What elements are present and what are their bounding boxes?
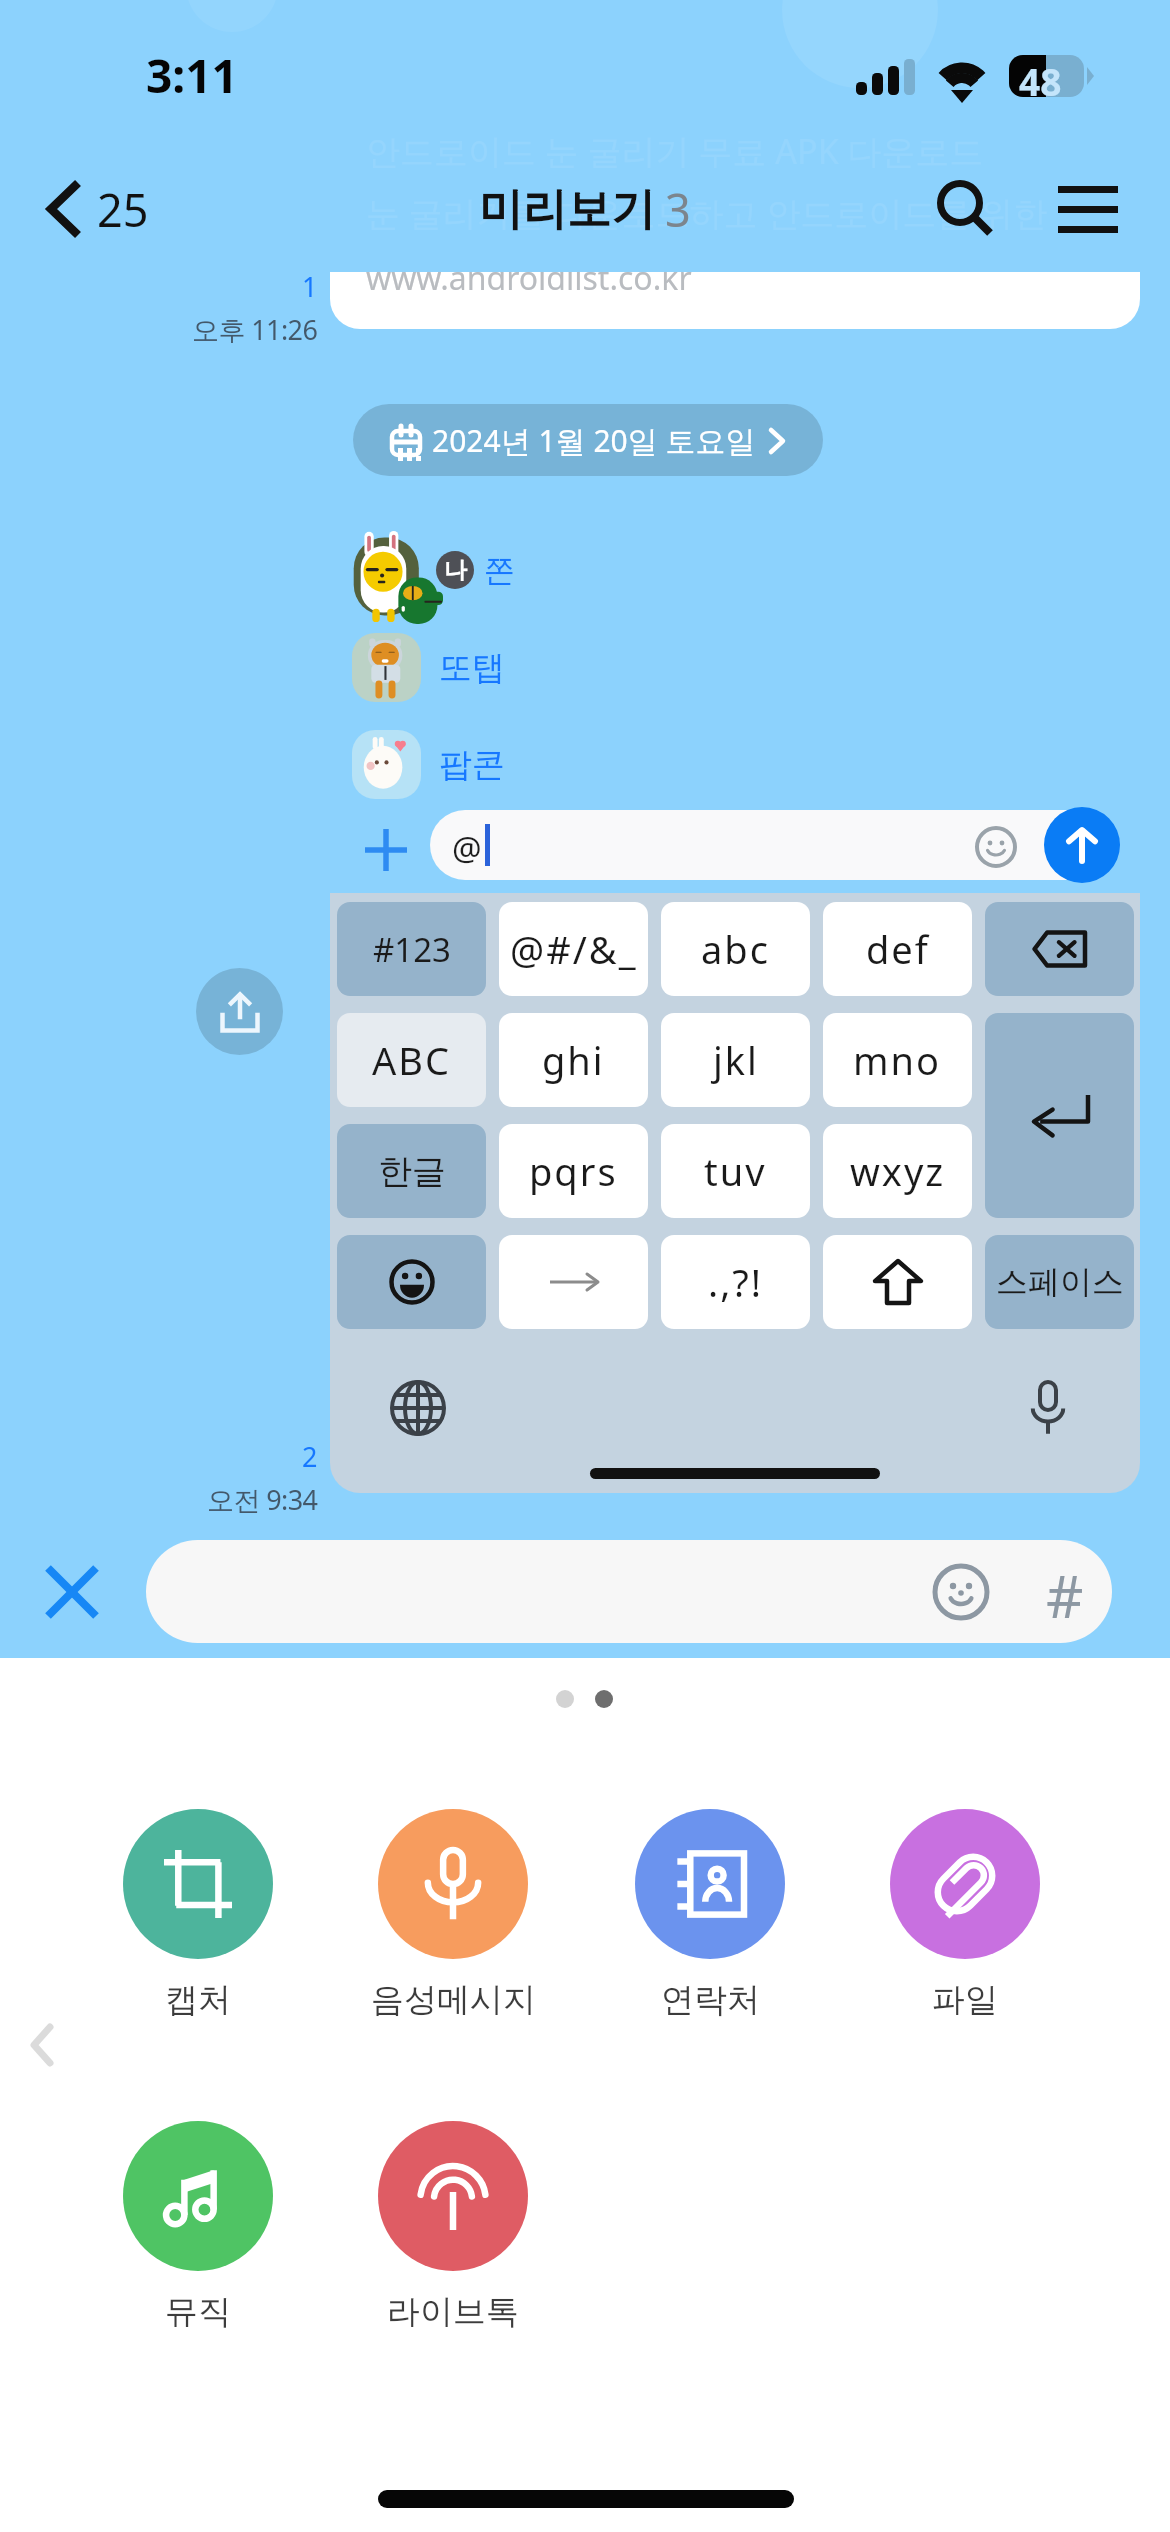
button[interactable] (499, 1235, 648, 1329)
staticText: 음성메시지 (371, 1979, 536, 2021)
button[interactable]: 또탭 (352, 633, 505, 702)
staticText: 스페이스 (996, 1262, 1124, 1302)
button[interactable]: 팝콘 (352, 730, 505, 799)
button[interactable]: Close (30, 1550, 114, 1634)
staticText: 파일 (932, 1979, 998, 2021)
button[interactable]: Backspace (985, 902, 1134, 996)
button[interactable]: Send (1044, 807, 1120, 883)
staticText: abc (701, 923, 770, 975)
button[interactable] (823, 1235, 972, 1329)
button[interactable]: wxyz (823, 1124, 972, 1218)
staticText: mno (853, 1034, 942, 1086)
button[interactable]: Previous page (4, 2002, 80, 2088)
button[interactable]: jkl (661, 1013, 810, 1107)
staticText: 25 (97, 179, 149, 240)
staticText: 3 (665, 179, 691, 240)
button[interactable]: Add (350, 814, 422, 886)
staticText: 라이브톡 (387, 2291, 519, 2333)
button[interactable]: 스페이스 (985, 1235, 1134, 1329)
staticText: tuv (704, 1145, 767, 1197)
staticText: 한글 (378, 1150, 446, 1193)
staticText: jkl (713, 1034, 759, 1086)
staticText: ABC (372, 1034, 451, 1086)
button[interactable]: 라이브톡 (333, 2121, 573, 2333)
button[interactable]: .,?! (661, 1235, 810, 1329)
staticText: 쫀 (484, 551, 515, 590)
button[interactable]: 캡처 (78, 1809, 318, 2021)
staticText: @#/&_ (510, 923, 638, 975)
button[interactable]: 한글 (337, 1124, 486, 1218)
button[interactable]: Voice input (1013, 1373, 1083, 1443)
staticText: 2024년 1월 20일 토요일 (432, 420, 756, 461)
staticText: #123 (373, 927, 451, 972)
staticText: @ (452, 826, 482, 871)
button[interactable]: 파일 (845, 1809, 1085, 2021)
button[interactable]: 뮤직 (78, 2121, 318, 2333)
staticText: 오후 11:26 (192, 311, 318, 348)
staticText: 팝콘 (439, 744, 505, 786)
staticText: 나 (444, 556, 467, 585)
staticText: 2 (302, 1438, 318, 1475)
button[interactable]: 25 (35, 150, 163, 268)
button[interactable]: pqrs (499, 1124, 648, 1218)
button[interactable]: abc (661, 902, 810, 996)
button[interactable]: Language (383, 1373, 453, 1443)
button[interactable]: ghi (499, 1013, 648, 1107)
button[interactable]: #123 (337, 902, 486, 996)
button[interactable]: @#/&_ (499, 902, 648, 996)
staticText: 오전 9:34 (207, 1481, 318, 1518)
staticText: 48 (1019, 56, 1062, 106)
button[interactable]: Share (196, 968, 283, 1055)
button[interactable]: def (823, 902, 972, 996)
staticText: def (866, 923, 930, 975)
staticText: pqrs (529, 1145, 618, 1197)
staticText: wxyz (850, 1145, 946, 1197)
button[interactable]: 연락처 (590, 1809, 830, 2021)
button[interactable]: 음성메시지 (333, 1809, 573, 2021)
button[interactable] (337, 1235, 486, 1329)
button[interactable]: Enter (985, 1013, 1134, 1218)
staticText: 눈 굴리기를 다운로드하고 안드로이드를 위한 (366, 190, 1048, 236)
staticText: 또탭 (439, 647, 505, 689)
staticText: 미리보기 (479, 182, 655, 237)
button[interactable]: Menu (1030, 150, 1146, 268)
button[interactable]: 나 (436, 545, 515, 595)
button[interactable]: Search (910, 150, 1022, 268)
staticText: 1 (302, 268, 318, 305)
staticText: www.androidlist.co.kr (366, 256, 692, 300)
button[interactable]: tuv (661, 1124, 810, 1218)
button[interactable]: # (146, 1540, 1112, 1643)
staticText: .,?! (708, 1256, 764, 1308)
button[interactable]: 2024년 1월 20일 토요일 (353, 404, 823, 476)
staticText: 캡처 (165, 1979, 231, 2021)
staticText: 3:11 (146, 44, 238, 107)
staticText: # (1046, 1556, 1084, 1635)
staticText: 뮤직 (165, 2291, 231, 2333)
button[interactable]: mno (823, 1013, 972, 1107)
staticText: ghi (542, 1034, 605, 1086)
staticText: 연락처 (661, 1979, 760, 2021)
button[interactable]: ABC (337, 1013, 486, 1107)
